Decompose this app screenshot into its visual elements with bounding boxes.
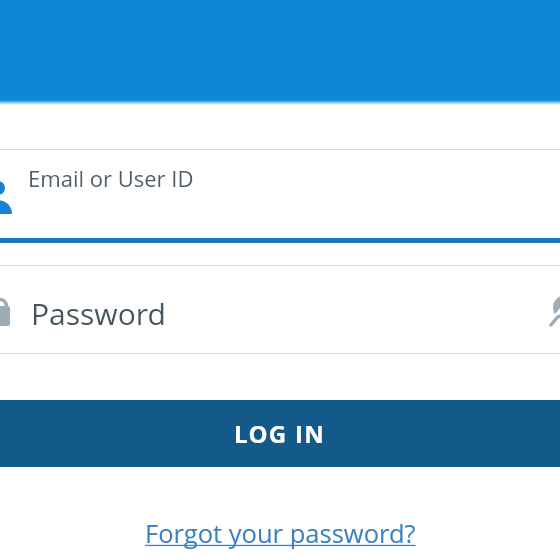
staticText: Password — [31, 293, 166, 334]
button[interactable]: LOG IN — [0, 400, 560, 467]
button[interactable]: Password — [0, 266, 560, 353]
button[interactable]: Email or User ID — [0, 150, 560, 237]
staticText: LOG IN — [234, 417, 326, 450]
button[interactable]: Forgot your password? — [145, 516, 416, 551]
staticText: Email or User ID — [28, 163, 194, 193]
